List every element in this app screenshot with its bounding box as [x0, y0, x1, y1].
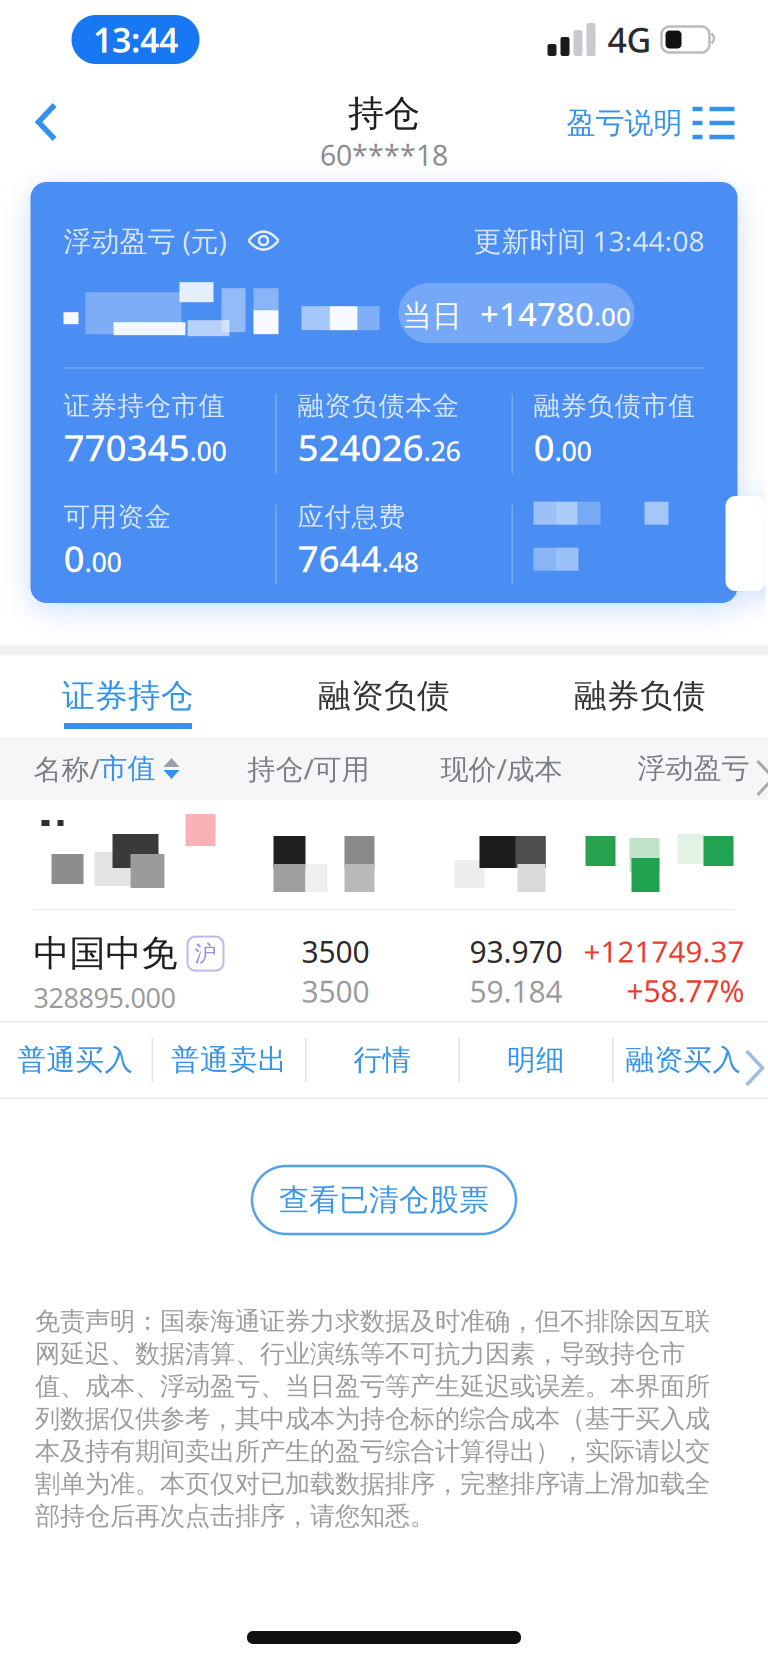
staticText: .00 [594, 299, 631, 333]
staticText: 0 [63, 533, 84, 582]
staticText: +14780 [462, 291, 594, 335]
staticText: 融券负债 [574, 676, 706, 716]
button[interactable]: 融券负债 [512, 655, 768, 737]
button[interactable]: 行情 [306, 1022, 458, 1097]
staticText: 普通卖出 [171, 1042, 287, 1077]
button[interactable]: 融资负债 [256, 655, 512, 737]
staticText: 60****18 [320, 136, 448, 173]
staticText: 应付息费 [297, 501, 405, 533]
staticText: 融资买入 [625, 1042, 741, 1077]
staticText: 名称/ [33, 750, 99, 787]
staticText: .00 [84, 544, 121, 580]
staticText: 浮动盈亏 [637, 751, 749, 786]
staticText: .26 [423, 433, 460, 469]
staticText: 当日 [402, 298, 462, 334]
staticText: .00 [189, 433, 226, 469]
staticText: 7644 [297, 533, 381, 582]
staticText: 证券持仓市值 [63, 390, 225, 422]
staticText: 浮动盈亏 (元) [63, 222, 226, 259]
staticText: .00 [554, 433, 591, 469]
staticText: 770345 [63, 422, 189, 471]
staticText: 明细 [507, 1042, 565, 1077]
button[interactable]: 查看已清仓股票 [252, 1166, 516, 1234]
staticText: +58.77% [626, 971, 744, 1010]
staticText: 证券持仓 [62, 676, 194, 716]
staticText: 59.184 [469, 971, 562, 1011]
staticText: 沪 [194, 940, 216, 967]
staticText: 普通买入 [17, 1042, 133, 1077]
button[interactable]: 明细 [460, 1022, 612, 1097]
staticText: 4G [607, 17, 651, 62]
button[interactable]: 持仓列表设置 [692, 106, 734, 140]
staticText: +121749.37 [583, 931, 744, 971]
staticText: .48 [381, 544, 418, 580]
staticText: 市值 [99, 751, 155, 786]
staticText: 持仓/可用 [247, 750, 369, 787]
staticText: 更新时间 13:44:08 [473, 222, 704, 259]
button[interactable]: 浮动盈亏 [637, 751, 765, 786]
button[interactable]: 普通买入 [0, 1022, 151, 1097]
staticText: 13:44 [93, 17, 178, 62]
button[interactable]: 中国中免 [0, 915, 768, 1016]
staticText: 部持仓后再次点击排序，请您知悉。 [35, 1501, 435, 1532]
staticText: 割单为准。本页仅对已加载数据排序，完整排序请上滑加载全 [35, 1468, 710, 1499]
button[interactable]: 隐藏金额 [248, 231, 278, 251]
staticText: 524026 [297, 422, 423, 471]
button[interactable]: 盈亏说明 [566, 105, 682, 141]
staticText: 网延迟、数据清算、行业演练等不可抗力因素，导致持仓市 [35, 1338, 685, 1369]
button[interactable]: 融资买入 [613, 1022, 768, 1097]
staticText: 0 [533, 422, 554, 471]
staticText: 93.970 [469, 931, 562, 971]
button[interactable]: 证券持仓 [0, 655, 256, 737]
staticText: 328895.000 [33, 980, 175, 1016]
staticText: 融资负债本金 [297, 390, 459, 422]
staticText: 中国中免 [33, 931, 177, 976]
button[interactable]: 名称/ [33, 750, 179, 787]
staticText: 3500 [301, 931, 369, 971]
staticText: 查看已清仓股票 [279, 1182, 489, 1218]
staticText: 免责声明：国泰海通证券力求数据及时准确，但不排除因互联 [35, 1306, 710, 1337]
staticText: 现价/成本 [440, 750, 562, 787]
button[interactable]: 返回 [0, 95, 57, 151]
button[interactable]: 普通卖出 [153, 1022, 305, 1097]
staticText: 行情 [353, 1042, 411, 1077]
staticText: 3500 [301, 971, 369, 1011]
staticText: 列数据仅供参考，其中成本为持仓标的综合成本（基于买入成 [35, 1403, 710, 1434]
staticText: 融资负债 [318, 676, 450, 716]
staticText: 值、成本、浮动盈亏、当日盈亏等产生延迟或误差。本界面所 [35, 1371, 710, 1402]
staticText: 可用资金 [63, 501, 171, 533]
staticText: 本及持有期间卖出所产生的盈亏综合计算得出），实际请以交 [35, 1436, 710, 1467]
staticText: 持仓 [348, 91, 420, 136]
staticText: 盈亏说明 [566, 105, 682, 141]
button[interactable]: 悬浮窗 [725, 496, 765, 591]
staticText: 融券负债市值 [533, 390, 695, 422]
